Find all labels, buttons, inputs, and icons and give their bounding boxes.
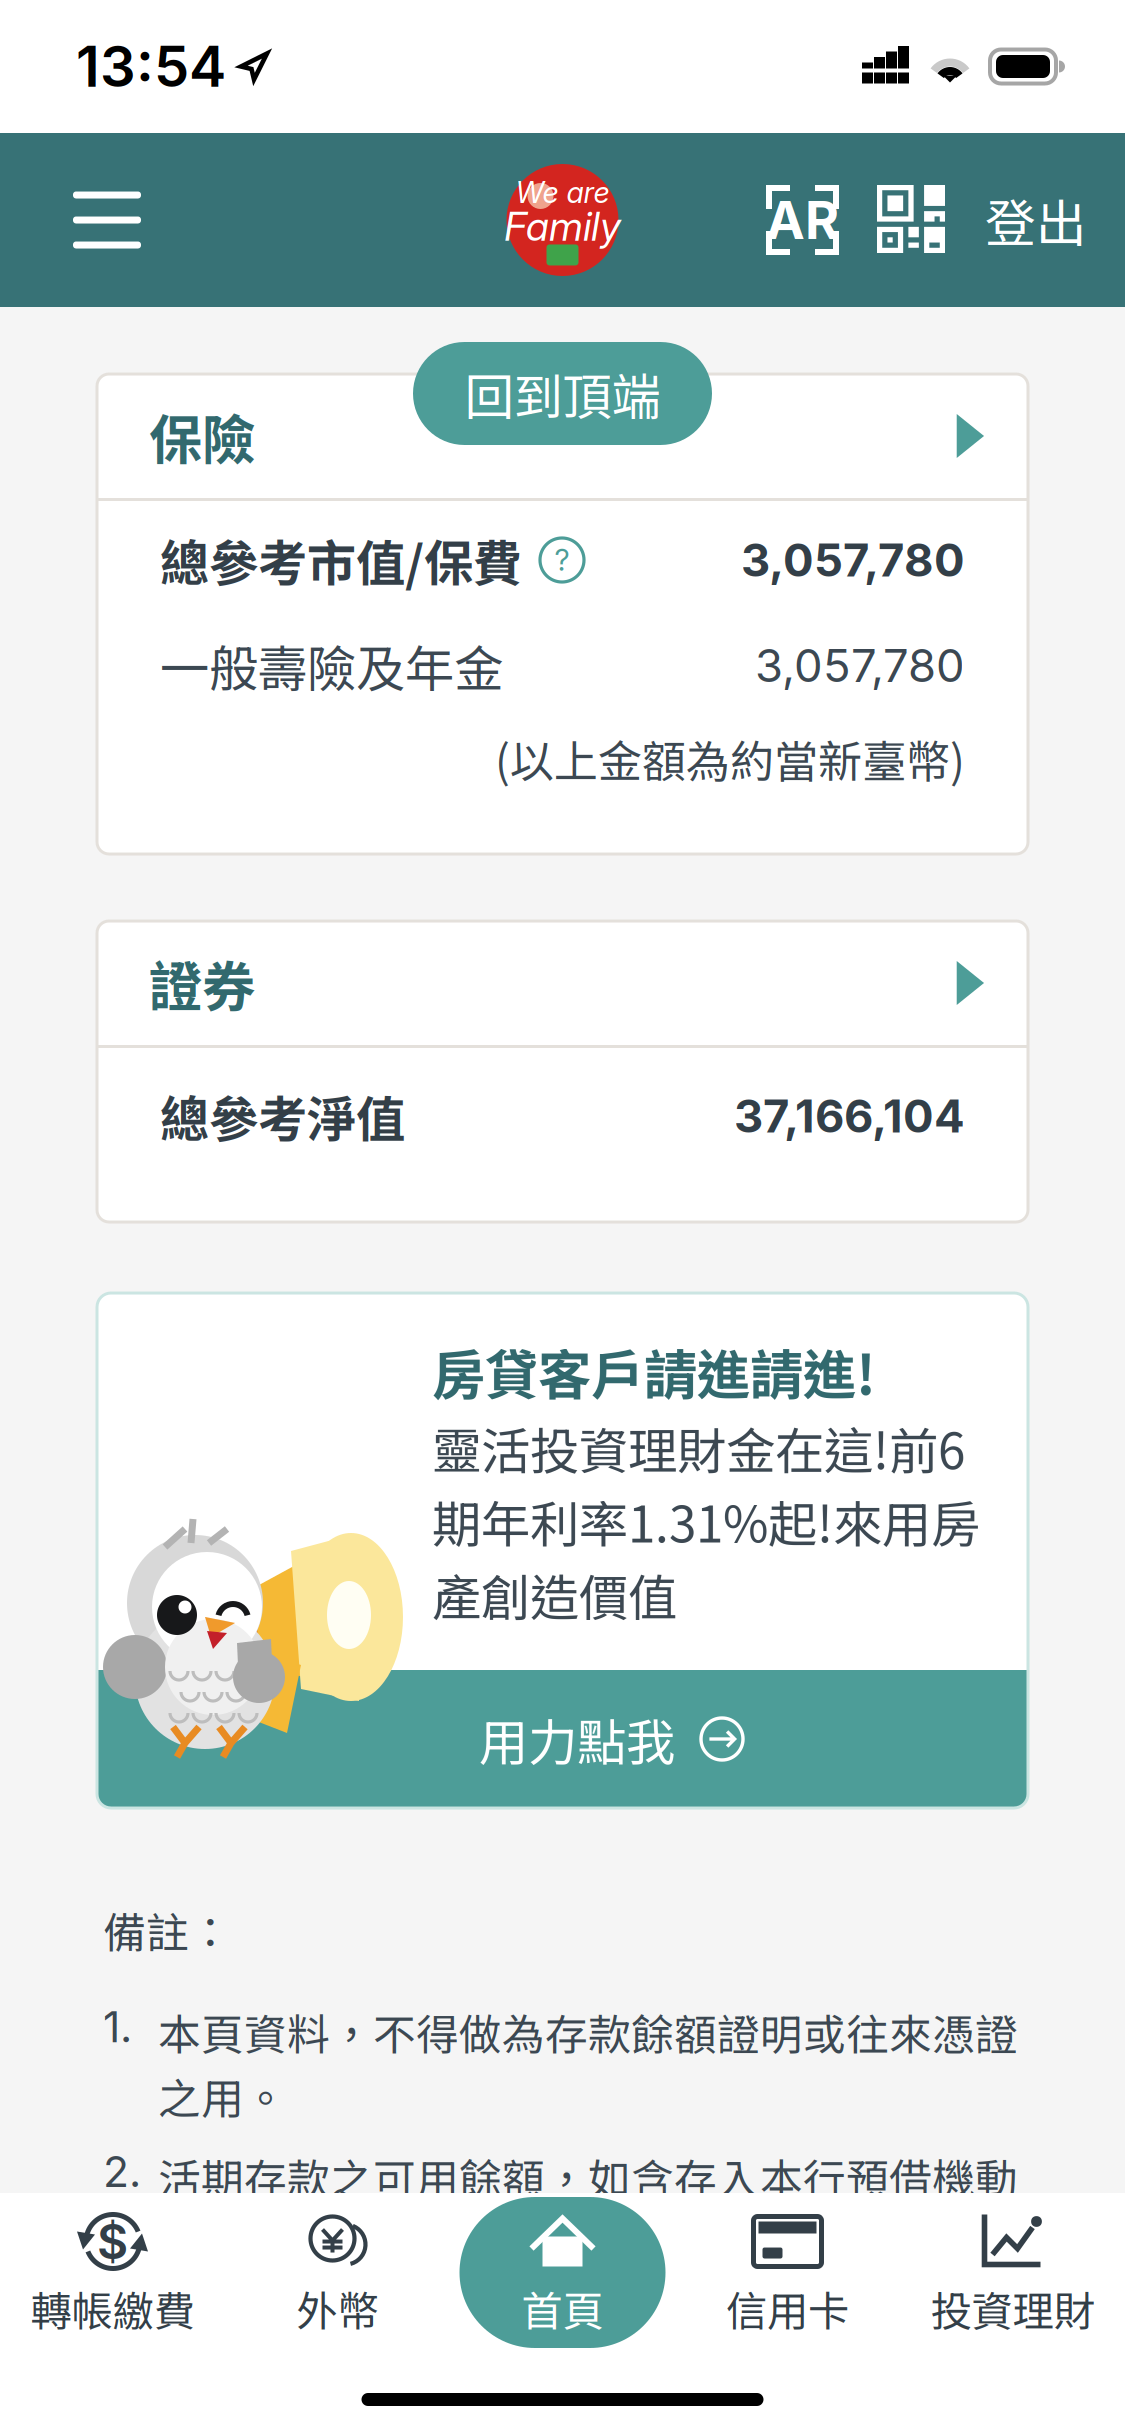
staticText: AR: [766, 188, 839, 251]
button[interactable]: 外幣: [225, 2197, 450, 2348]
staticText: 投資理財: [930, 2279, 1094, 2338]
staticText: 之用。: [158, 2065, 287, 2127]
staticText: 總參考市值/保費: [160, 524, 522, 596]
button[interactable]: 信用卡: [675, 2197, 900, 2348]
staticText: $: [97, 2212, 128, 2271]
staticText: 房貸客戶請進請進!: [432, 1333, 876, 1410]
staticText: 轉帳繳費: [30, 2279, 194, 2338]
button[interactable]: 投資理財: [900, 2197, 1125, 2348]
staticText: 登出: [985, 183, 1087, 257]
staticText: We are: [515, 175, 609, 210]
button[interactable]: Menu: [0, 151, 171, 288]
staticText: 產創造價值: [432, 1559, 677, 1630]
button[interactable]: 證券: [97, 921, 1028, 1045]
staticText: 3,057,780: [741, 533, 965, 587]
staticText: Family: [504, 202, 621, 250]
button[interactable]: 登出: [985, 153, 1087, 287]
staticText: 期年利率1.31%起!來用房: [432, 1485, 980, 1557]
button[interactable]: $: [0, 2197, 225, 2348]
staticText: 信用卡: [726, 2279, 849, 2338]
staticText: 外幣: [296, 2279, 378, 2338]
staticText: 13:54: [76, 33, 226, 100]
button[interactable]: 保險: [97, 374, 1028, 498]
button[interactable]: 首頁: [450, 2197, 675, 2348]
staticText: 證券: [149, 944, 255, 1022]
staticText: 本頁資料，不得做為存款餘額證明或往來憑證: [158, 2001, 1018, 2063]
staticText: 用力點我: [479, 1703, 675, 1775]
staticText: 37,166,104: [734, 1089, 965, 1143]
staticText: 保險: [149, 397, 255, 475]
staticText: 總參考淨值: [160, 1080, 405, 1152]
staticText: 備註：: [103, 1899, 232, 1961]
staticText: 靈活投資理財金在這!前6: [432, 1412, 965, 1483]
staticText: 2.: [103, 2146, 141, 2197]
staticText: 一般壽險及年金: [160, 630, 503, 701]
button[interactable]: AR: [766, 155, 839, 285]
staticText: 首頁: [521, 2279, 603, 2338]
staticText: ?: [554, 542, 569, 578]
button[interactable]: QR code scanner: [877, 155, 945, 285]
staticText: 回到頂端: [464, 358, 660, 429]
button[interactable]: 回到頂端: [413, 342, 712, 445]
staticText: 1.: [103, 2001, 132, 2053]
staticText: 3,057,780: [755, 638, 965, 693]
button[interactable]: 房貸客戶請進請進!: [97, 1293, 1028, 1808]
staticText: 活期存款之可用餘額，如含存入本行預借機動: [158, 2146, 1018, 2208]
staticText: (以上金額為約當新臺幣): [495, 727, 965, 790]
